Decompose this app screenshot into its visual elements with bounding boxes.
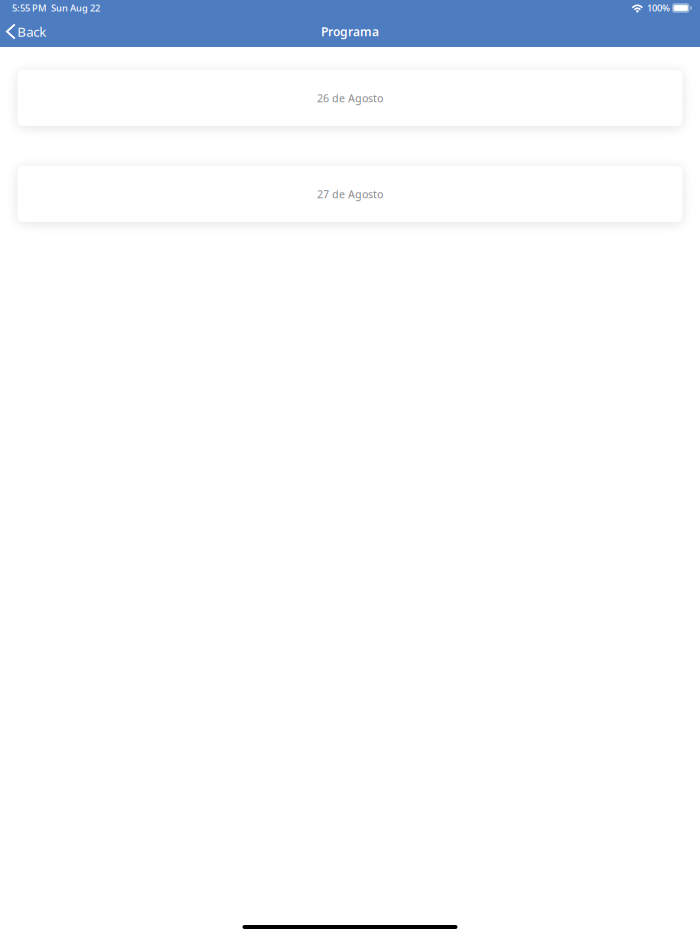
button[interactable]: 26 de Agosto xyxy=(17,70,682,126)
button[interactable]: Back xyxy=(0,16,54,47)
staticText: 26 de Agosto xyxy=(317,91,383,105)
staticText: 5:55 PM xyxy=(12,2,47,14)
staticText: Back xyxy=(17,23,46,40)
staticText: 100% xyxy=(647,2,670,14)
staticText: Programa xyxy=(321,23,379,39)
staticText: 27 de Agosto xyxy=(317,187,383,201)
staticText: Sun Aug 22 xyxy=(51,2,100,14)
button[interactable]: 27 de Agosto xyxy=(17,166,682,222)
